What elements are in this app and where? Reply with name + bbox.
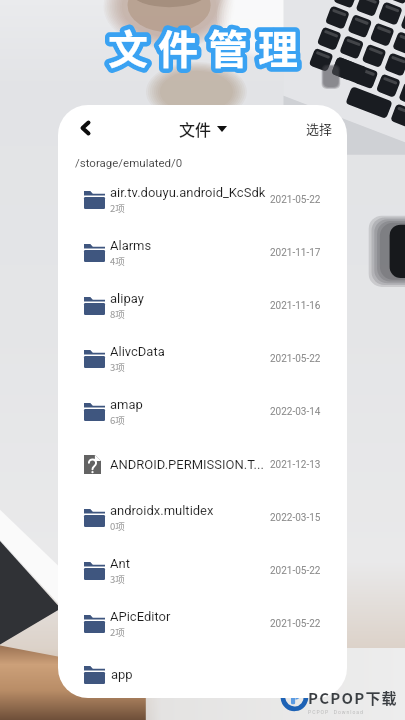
staticText: 4项 [110, 254, 125, 268]
staticText: 文件 [179, 117, 212, 140]
staticText: ANDROID.PERMISSION.T... [110, 457, 264, 472]
staticText: PCPOP下载 [308, 687, 398, 709]
staticText: 选择 [306, 119, 333, 138]
staticText: 2021-12-13 [270, 459, 321, 471]
button[interactable]: 选择 [306, 119, 333, 138]
staticText: 2021-05-22 [270, 618, 321, 630]
staticText: 3项 [110, 360, 125, 374]
staticText: app [111, 667, 133, 682]
staticText: 3项 [110, 572, 125, 586]
staticText: 8项 [110, 307, 125, 321]
staticText: 6项 [110, 413, 125, 427]
button[interactable]: 文件 [179, 117, 227, 140]
staticText: /storage/emulated/0 [75, 156, 183, 169]
button[interactable]: AlivcData [58, 332, 347, 385]
staticText: Ant [110, 556, 130, 571]
button[interactable]: air.tv.douyu.android_KcSdk [58, 173, 347, 226]
button[interactable]: app [58, 650, 347, 698]
staticText: 2022-03-14 [270, 406, 321, 418]
button[interactable]: APicEditor [58, 597, 347, 650]
staticText: 0项 [110, 519, 125, 533]
button[interactable]: ANDROID.PERMISSION.T... [58, 438, 347, 491]
staticText: 文件管理 [108, 18, 308, 76]
button[interactable]: Ant [58, 544, 347, 597]
button[interactable]: alipay [58, 279, 347, 332]
button[interactable]: Back [68, 111, 102, 145]
button[interactable]: Alarms [58, 226, 347, 279]
staticText: AlivcData [110, 344, 165, 359]
staticText: PCPOP Download [308, 709, 364, 715]
staticText: 2021-05-22 [270, 194, 321, 206]
staticText: air.tv.douyu.android_KcSdk [110, 185, 266, 200]
staticText: 2021-05-22 [270, 353, 321, 365]
staticText: androidx.multidex [110, 503, 214, 518]
staticText: 文件管理 [108, 18, 308, 76]
button[interactable]: amap [58, 385, 347, 438]
staticText: 2021-11-16 [270, 300, 321, 312]
staticText: alipay [110, 291, 144, 306]
staticText: 2022-03-15 [270, 512, 321, 524]
staticText: 2021-05-22 [270, 565, 321, 577]
staticText: Alarms [110, 238, 152, 253]
staticText: amap [110, 397, 143, 412]
staticText: 2项 [110, 625, 125, 639]
staticText: 2021-11-17 [270, 247, 321, 259]
button[interactable]: androidx.multidex [58, 491, 347, 544]
staticText: APicEditor [110, 609, 171, 624]
staticText: 2项 [110, 201, 125, 215]
